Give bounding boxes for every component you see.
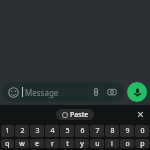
button[interactable]: Paste	[56, 109, 94, 120]
staticText: 0	[140, 126, 145, 136]
button[interactable]: 5	[60, 125, 74, 137]
button[interactable]: t	[60, 139, 74, 148]
staticText: 5	[65, 126, 70, 136]
button[interactable]: 3	[30, 125, 44, 137]
button[interactable]: Voice message	[127, 82, 147, 102]
button[interactable]: 9	[120, 125, 134, 137]
button[interactable]: Emoji	[7, 86, 19, 98]
staticText: 3	[35, 126, 40, 136]
button[interactable]: p	[135, 139, 149, 148]
button[interactable]: 6	[75, 125, 89, 137]
staticText: e	[35, 139, 39, 148]
button[interactable]: e	[30, 139, 44, 148]
staticText: y	[80, 139, 84, 148]
staticText: p	[140, 139, 145, 148]
button[interactable]: 4	[45, 125, 59, 137]
staticText: 7	[95, 126, 100, 136]
button[interactable]: r	[45, 139, 59, 148]
button[interactable]: i	[105, 139, 119, 148]
staticText: r	[51, 139, 54, 148]
staticText: Message	[25, 87, 90, 98]
button[interactable]: Attach	[90, 86, 102, 98]
button[interactable]: Emoji	[3, 82, 124, 102]
staticText: Paste	[70, 110, 89, 120]
staticText: i	[111, 139, 113, 148]
staticText: t	[66, 139, 69, 148]
staticText: u	[95, 139, 100, 148]
button[interactable]: w	[15, 139, 29, 148]
staticText: 2	[20, 126, 25, 136]
button[interactable]: Camera	[106, 86, 118, 98]
button[interactable]: o	[120, 139, 134, 148]
staticText: 1	[5, 126, 10, 136]
staticText: q	[5, 139, 10, 148]
staticText: w	[19, 139, 25, 148]
button[interactable]: 0	[135, 125, 149, 137]
button[interactable]: u	[90, 139, 104, 148]
button[interactable]: Close	[134, 108, 146, 120]
button[interactable]: q	[1, 139, 14, 148]
staticText: 4	[50, 126, 55, 136]
button[interactable]: 2	[15, 125, 29, 137]
button[interactable]: 7	[90, 125, 104, 137]
button[interactable]: 1	[1, 125, 14, 137]
button[interactable]: 8	[105, 125, 119, 137]
staticText: o	[125, 139, 130, 148]
staticText: 8	[110, 126, 115, 136]
button[interactable]: y	[75, 139, 89, 148]
staticText: 9	[125, 126, 130, 136]
staticText: 6	[80, 126, 85, 136]
